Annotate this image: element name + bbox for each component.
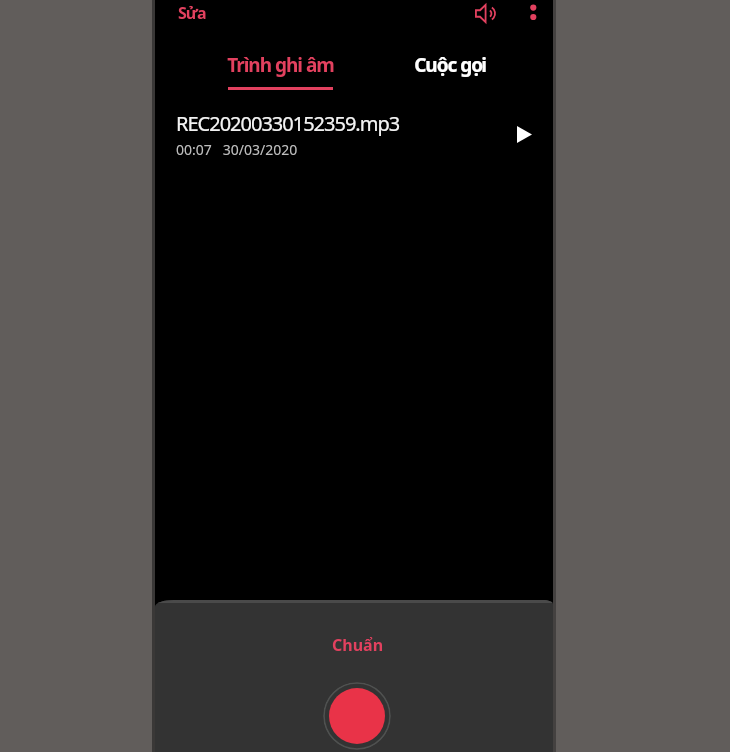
staticText: 00:07 30/03/2020	[176, 140, 298, 159]
button[interactable]: Trình ghi âm	[187, 52, 373, 100]
button[interactable]: Chuẩn	[318, 630, 398, 660]
button[interactable]: REC20200330152359.mp3	[155, 105, 553, 163]
button[interactable]: Play	[506, 116, 542, 152]
button[interactable]: Cuộc gọi	[362, 52, 538, 100]
staticText: Trình ghi âm	[227, 52, 334, 78]
button[interactable]: More options	[519, 0, 548, 28]
staticText: Sửa	[178, 2, 206, 24]
button[interactable]: Speaker	[468, 0, 504, 26]
staticText: Chuẩn	[332, 634, 384, 656]
button[interactable]: Record	[323, 682, 391, 750]
staticText: Cuộc gọi	[414, 52, 486, 78]
button[interactable]: Sửa	[164, 0, 220, 26]
staticText: REC20200330152359.mp3	[176, 110, 400, 137]
